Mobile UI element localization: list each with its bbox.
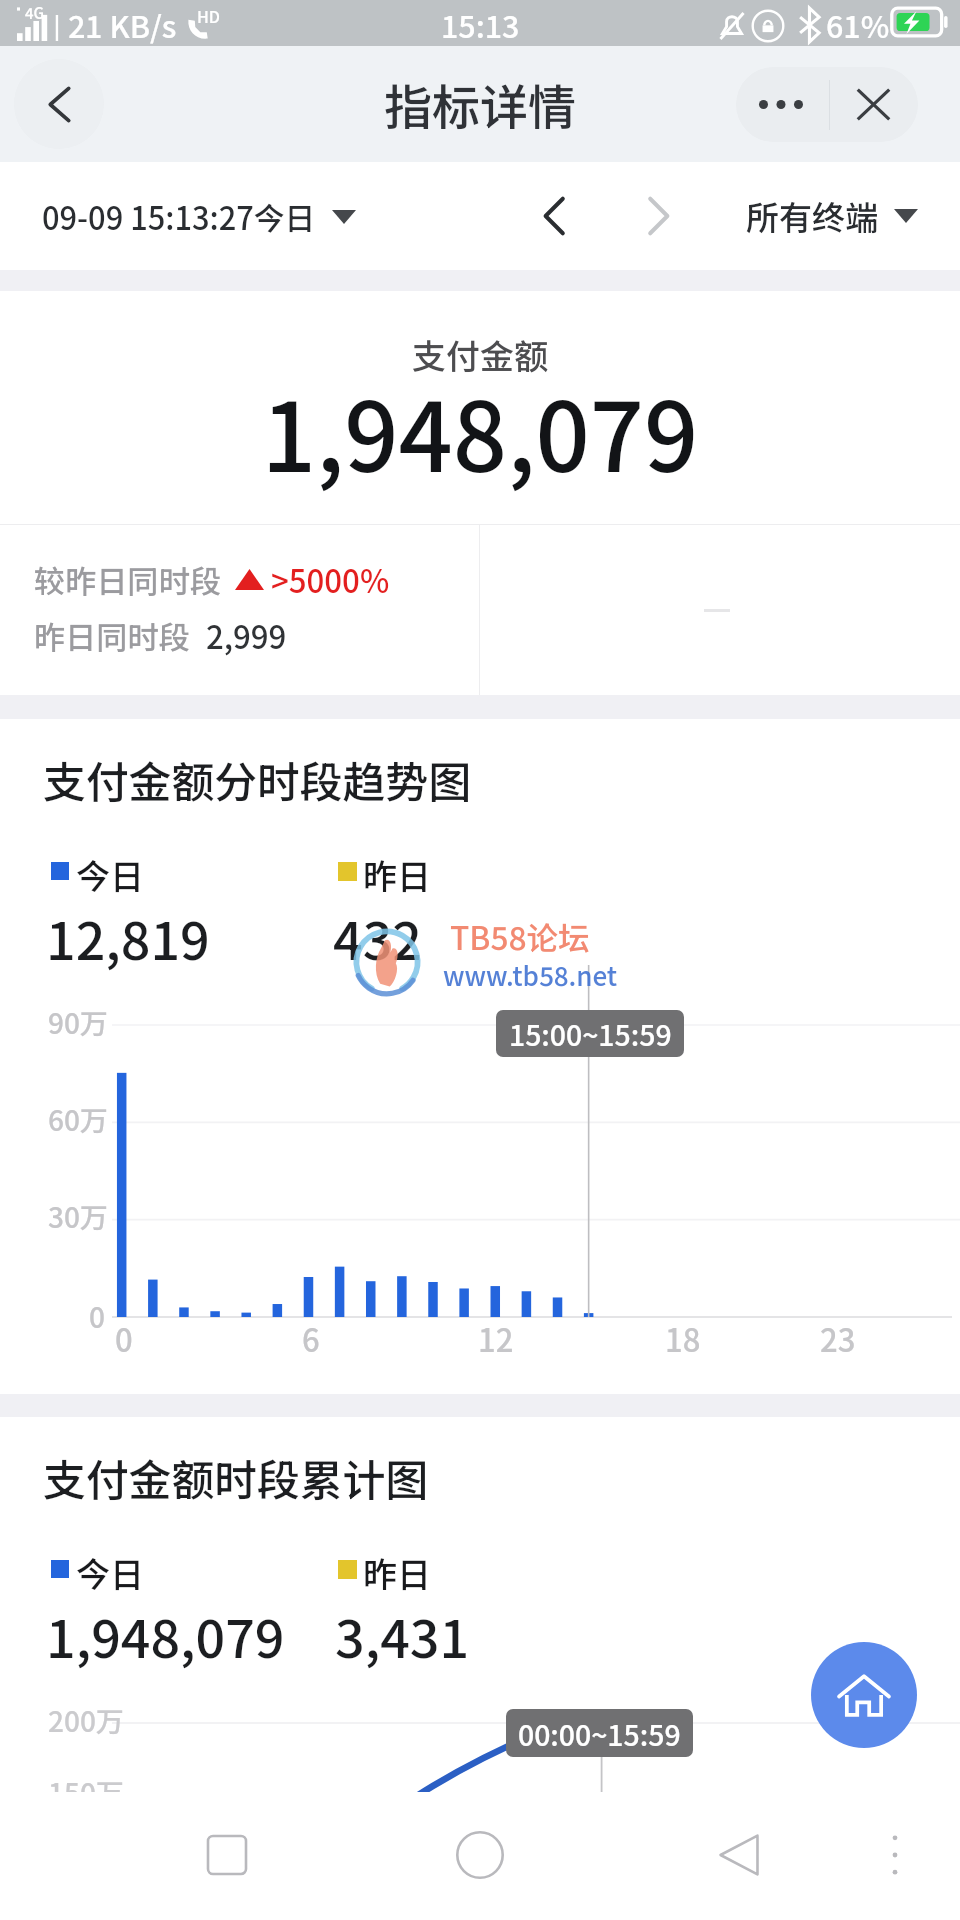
button[interactable]: 09-09 15:13:27今日: [42, 194, 356, 239]
staticText: 1,948,079: [46, 1598, 285, 1673]
staticText: 昨日: [363, 1548, 431, 1592]
staticText: 12: [478, 1316, 514, 1361]
staticText: 00:00~15:59: [518, 1713, 681, 1754]
button[interactable]: More options: [736, 67, 826, 142]
button[interactable]: Home: [811, 1642, 917, 1748]
staticText: 60万: [48, 1099, 108, 1140]
staticText: 432: [333, 900, 422, 975]
staticText: 90万: [48, 1002, 108, 1043]
staticText: 昨日同时段: [34, 613, 190, 658]
staticText: TB58论坛: [450, 913, 590, 959]
staticText: 61%: [826, 3, 890, 47]
staticText: 2,999: [206, 613, 287, 658]
button[interactable]: Recent apps: [181, 1809, 273, 1901]
staticText: 12,819: [46, 900, 210, 975]
staticText: 较昨日同时段: [34, 557, 222, 602]
button[interactable]: Back: [693, 1809, 785, 1901]
staticText: 150万: [48, 1772, 124, 1813]
staticText: HD: [197, 4, 221, 27]
staticText: 昨日: [363, 850, 431, 894]
staticText: 3,431: [335, 1598, 470, 1673]
staticText: >5000%: [271, 557, 390, 602]
button[interactable]: Previous period: [516, 178, 592, 254]
staticText: 15:00~15:59: [509, 1013, 672, 1054]
staticText: 09-09 15:13:27今日: [42, 194, 316, 239]
button[interactable]: Close: [828, 67, 918, 142]
staticText: 0: [89, 1296, 105, 1337]
button[interactable]: Home: [434, 1809, 526, 1901]
staticText: 200万: [48, 1700, 124, 1741]
staticText: 所有终端: [746, 192, 878, 240]
staticText: 今日: [76, 850, 144, 894]
staticText: 4G: [25, 2, 45, 24]
staticText: 6: [302, 1316, 320, 1361]
staticText: 18: [665, 1316, 701, 1361]
staticText: 21 KB/s: [68, 3, 177, 47]
staticText: www.tb58.net: [443, 956, 618, 994]
staticText: 1,948,079: [0, 362, 960, 500]
button[interactable]: More: [849, 1809, 941, 1901]
staticText: 23: [820, 1316, 856, 1361]
staticText: 支付金额分时段趋势图: [43, 748, 471, 810]
staticText: 30万: [48, 1196, 108, 1237]
staticText: 今日: [76, 1548, 144, 1592]
staticText: 0: [115, 1316, 133, 1361]
button[interactable]: Next period: [621, 178, 697, 254]
button[interactable]: 所有终端: [746, 192, 918, 240]
staticText: 支付金额: [0, 330, 960, 379]
staticText: 指标详情: [384, 69, 577, 139]
staticText: 支付金额时段累计图: [43, 1446, 429, 1508]
staticText: 15:13: [441, 3, 520, 47]
button[interactable]: Back: [14, 59, 104, 149]
